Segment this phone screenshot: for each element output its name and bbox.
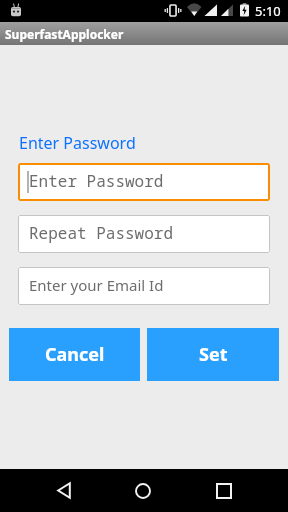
staticText: 5:10 — [255, 2, 281, 20]
button[interactable]: Repeat Password — [18, 215, 270, 253]
staticText: Enter Password — [29, 170, 164, 192]
staticText: Repeat Password — [29, 222, 174, 244]
button[interactable]: Enter your Email Id — [18, 267, 270, 305]
button[interactable]: Cancel — [9, 328, 140, 381]
staticText: Set — [199, 342, 228, 367]
staticText: Cancel — [45, 342, 105, 367]
staticText: Enter Password — [19, 132, 136, 154]
button[interactable]: Back — [42, 469, 86, 512]
button[interactable]: Set — [147, 328, 279, 381]
button[interactable]: Recents — [202, 469, 246, 512]
button[interactable]: Home — [121, 469, 165, 512]
staticText: SuperfastApplocker — [5, 26, 124, 42]
button[interactable]: Enter Password — [18, 163, 270, 201]
staticText: Enter your Email Id — [29, 275, 164, 295]
